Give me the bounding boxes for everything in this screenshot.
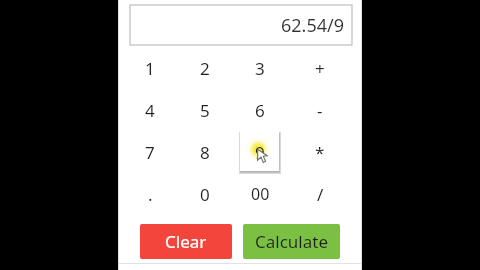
staticText: 4 xyxy=(145,99,155,122)
button[interactable]: / xyxy=(298,172,342,216)
button[interactable]: 7 xyxy=(128,130,172,174)
button[interactable]: 3 xyxy=(238,46,282,90)
button[interactable]: 9 xyxy=(238,130,282,174)
staticText: 62.54/9 xyxy=(281,13,344,38)
staticText: 8 xyxy=(200,141,210,164)
staticText: 00 xyxy=(251,183,270,205)
button[interactable]: Clear xyxy=(140,224,232,259)
button[interactable]: - xyxy=(298,88,342,132)
staticText: - xyxy=(317,99,323,122)
button[interactable]: 2 xyxy=(183,46,227,90)
button[interactable]: 1 xyxy=(128,46,172,90)
staticText: . xyxy=(148,183,153,206)
button[interactable]: 4 xyxy=(128,88,172,132)
staticText: 5 xyxy=(200,99,210,122)
button[interactable]: 0 xyxy=(183,172,227,216)
staticText: Calculate xyxy=(255,230,328,253)
staticText: 9 xyxy=(255,141,265,164)
button[interactable]: Calculate xyxy=(243,224,340,259)
staticText: 1 xyxy=(145,57,155,80)
staticText: / xyxy=(317,183,324,206)
button[interactable]: * xyxy=(298,130,342,174)
button[interactable]: 5 xyxy=(183,88,227,132)
button[interactable]: . xyxy=(128,172,172,216)
staticText: 2 xyxy=(200,57,210,80)
button[interactable]: 8 xyxy=(183,130,227,174)
staticText: 3 xyxy=(255,57,265,80)
staticText: Clear xyxy=(165,230,207,253)
staticText: 7 xyxy=(145,141,155,164)
staticText: * xyxy=(315,141,325,164)
button[interactable]: + xyxy=(298,46,342,90)
staticText: 0 xyxy=(200,183,210,206)
staticText: 6 xyxy=(255,99,265,122)
staticText: + xyxy=(315,57,325,80)
button[interactable]: 00 xyxy=(238,172,282,216)
button[interactable]: 62.54/9 xyxy=(130,5,352,45)
button[interactable]: 6 xyxy=(238,88,282,132)
